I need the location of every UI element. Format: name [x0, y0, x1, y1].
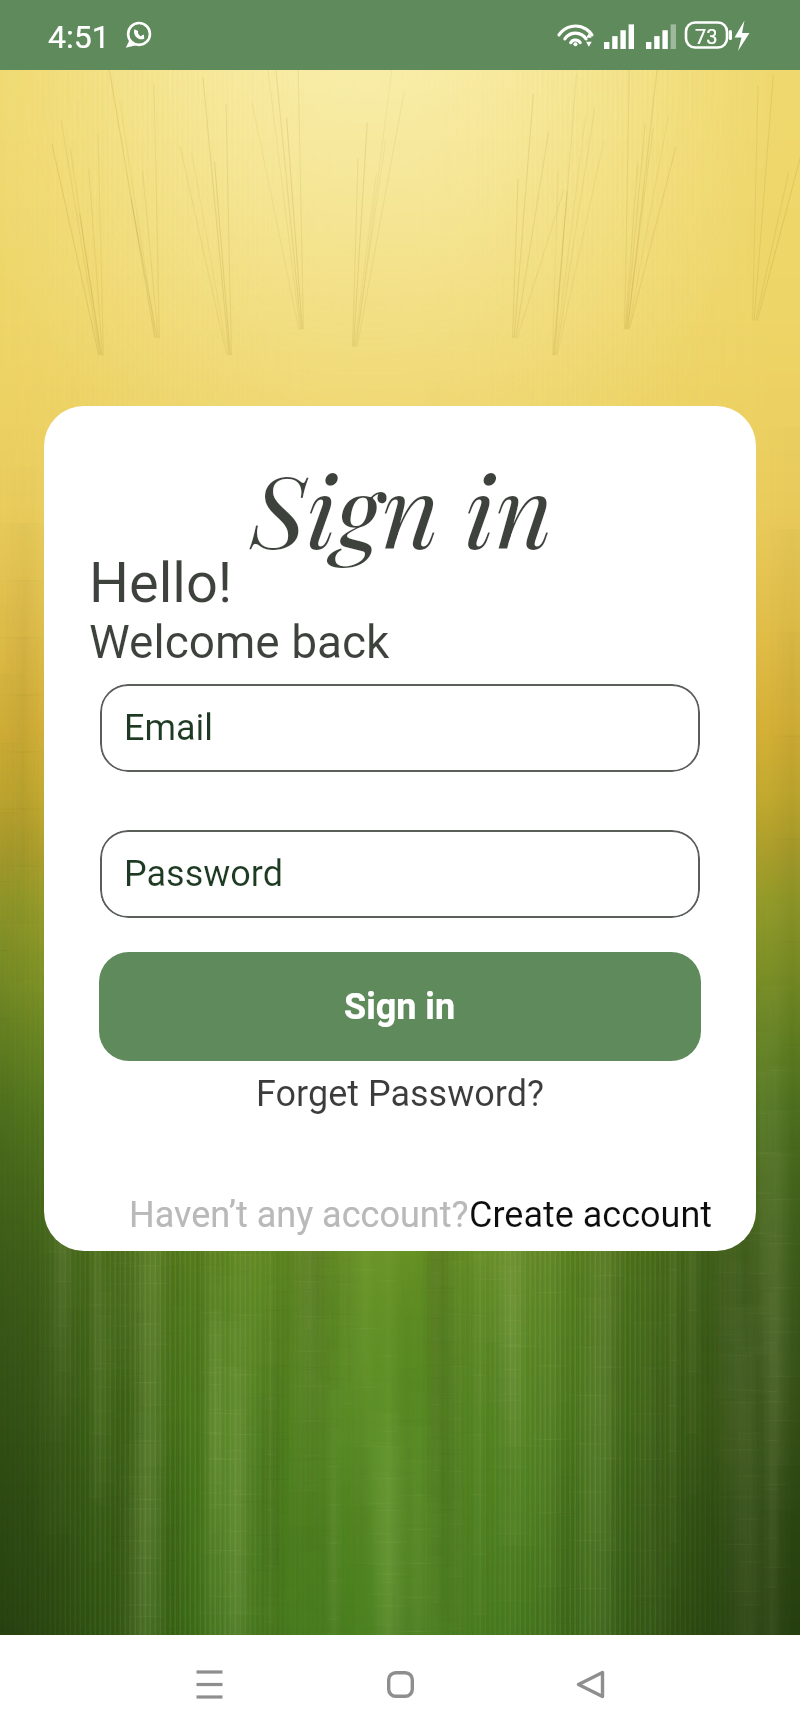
- button[interactable]: Password: [100, 830, 700, 918]
- staticText: Hello!: [89, 550, 233, 616]
- staticText: 73: [695, 25, 718, 48]
- staticText: Email: [124, 707, 214, 749]
- button[interactable]: Back: [540, 1635, 640, 1733]
- button[interactable]: Create account: [469, 1194, 713, 1236]
- button[interactable]: Recent apps: [159, 1635, 259, 1733]
- staticText: Welcome back: [89, 615, 390, 669]
- staticText: 4:51: [48, 18, 110, 56]
- staticText: Create account: [469, 1194, 713, 1236]
- button[interactable]: Home: [350, 1635, 450, 1733]
- staticText: Forget Password?: [256, 1073, 544, 1115]
- button[interactable]: Forget Password?: [44, 1067, 756, 1121]
- button[interactable]: Email: [100, 684, 700, 772]
- staticText: Sign in: [46, 441, 756, 574]
- staticText: Sign in: [344, 986, 456, 1028]
- staticText: Password: [124, 853, 284, 895]
- button[interactable]: Sign in: [99, 952, 701, 1061]
- staticText: Haven’t any account?: [129, 1194, 469, 1236]
